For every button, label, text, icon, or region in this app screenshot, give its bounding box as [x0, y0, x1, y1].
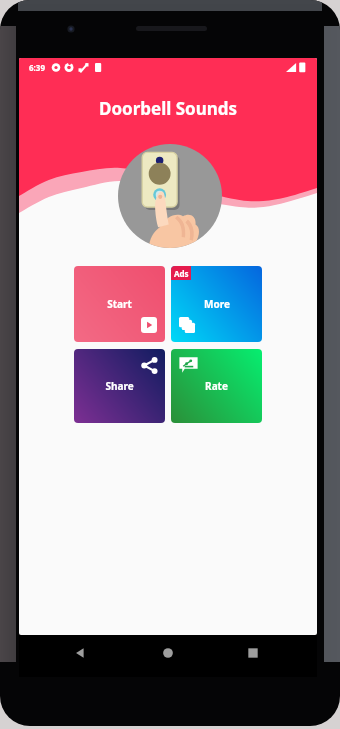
button[interactable]: Ads: [171, 266, 262, 342]
staticText: Ads: [174, 268, 189, 279]
button[interactable]: Recent apps: [244, 644, 262, 662]
button[interactable]: Share: [74, 349, 165, 423]
staticText: Rate: [205, 379, 228, 393]
button[interactable]: Back: [71, 644, 89, 662]
staticText: Doorbell Sounds: [99, 97, 238, 120]
button[interactable]: Start: [74, 266, 165, 342]
button[interactable]: Rate: [171, 349, 262, 423]
staticText: More: [204, 297, 230, 311]
staticText: 6:39: [29, 62, 45, 73]
staticText: Start: [107, 297, 132, 311]
staticText: Share: [105, 379, 134, 393]
button[interactable]: Home: [159, 644, 177, 662]
